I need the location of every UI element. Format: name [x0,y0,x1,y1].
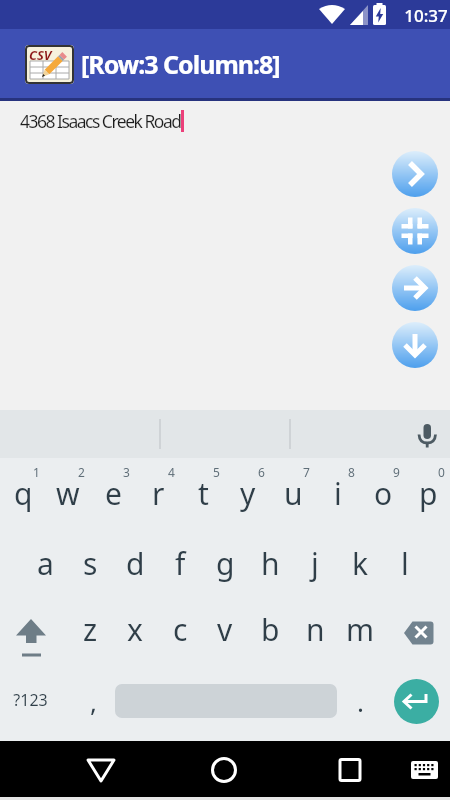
staticText: 4368 Isaacs Creek Road [20,109,181,133]
button[interactable]: v [203,599,247,659]
staticText: 1 [33,464,40,480]
staticText: x [127,609,143,650]
button[interactable] [397,605,442,660]
button[interactable]: c [158,599,202,659]
button[interactable] [198,748,250,793]
staticText: z [83,609,98,650]
button[interactable]: p [406,463,450,523]
button[interactable]: l [383,533,427,593]
staticText: 5 [213,464,220,480]
staticText: b [261,609,280,650]
staticText: u [284,473,303,514]
staticText: e [105,473,122,514]
staticText: d [126,543,145,584]
button[interactable] [392,151,438,197]
staticText: ?123 [13,689,48,711]
button[interactable] [392,208,438,254]
staticText: h [261,543,280,584]
button[interactable] [392,322,438,368]
button[interactable]: . [338,671,382,731]
staticText: 10:37 [404,4,448,27]
button[interactable]: k [338,533,382,593]
staticText: 3 [123,464,130,480]
button[interactable] [394,679,439,724]
staticText: 8 [348,464,355,480]
staticText: o [374,473,393,514]
button[interactable]: u [271,463,315,523]
button[interactable]: w [46,463,90,523]
staticText: y [240,473,256,514]
button[interactable]: x [113,599,157,659]
staticText: 4 [168,464,175,480]
staticText: s [83,543,98,584]
staticText: i [334,473,342,514]
button[interactable]: r [136,463,180,523]
staticText: t [198,473,209,514]
staticText: 0 [438,464,445,480]
button[interactable]: j [293,533,337,593]
button[interactable]: , [71,671,115,731]
button[interactable]: o [361,463,405,523]
staticText: CSV [29,46,52,64]
button[interactable]: f [158,533,202,593]
button[interactable] [405,755,443,787]
button[interactable]: e [91,463,135,523]
button[interactable]: q [1,463,45,523]
button[interactable]: [Row:3 Column:8] [81,29,280,98]
button[interactable]: t [181,463,225,523]
button[interactable]: n [293,599,337,659]
staticText: c [173,609,188,650]
button[interactable]: h [248,533,292,593]
staticText: r [152,473,165,514]
staticText: p [419,473,438,514]
staticText: w [56,473,80,514]
button[interactable]: y [226,463,270,523]
staticText: j [311,543,319,584]
staticText: a [37,543,54,584]
staticText: 2 [78,464,85,480]
staticText: 7 [303,464,310,480]
staticText: n [306,609,325,650]
button[interactable] [412,418,442,448]
staticText: q [14,473,33,514]
button[interactable]: i [316,463,360,523]
staticText: f [175,543,186,584]
staticText: m [346,609,375,650]
button[interactable]: d [113,533,157,593]
button[interactable]: a [23,533,67,593]
button[interactable]: g [203,533,247,593]
staticText: 6 [258,464,265,480]
button[interactable] [75,748,127,793]
button[interactable] [8,605,53,660]
staticText: , [90,684,97,719]
staticText: l [401,543,409,584]
staticText: [Row:3 Column:8] [81,47,280,81]
staticText: g [216,543,235,584]
button[interactable] [392,265,438,311]
staticText: 9 [393,464,400,480]
button[interactable] [324,748,376,793]
button[interactable]: m [338,599,382,659]
staticText: . [357,684,364,719]
button[interactable] [8,675,53,725]
staticText: k [352,543,369,584]
button[interactable]: s [68,533,112,593]
button[interactable]: z [68,599,112,659]
staticText: v [217,609,233,650]
button[interactable]: b [248,599,292,659]
